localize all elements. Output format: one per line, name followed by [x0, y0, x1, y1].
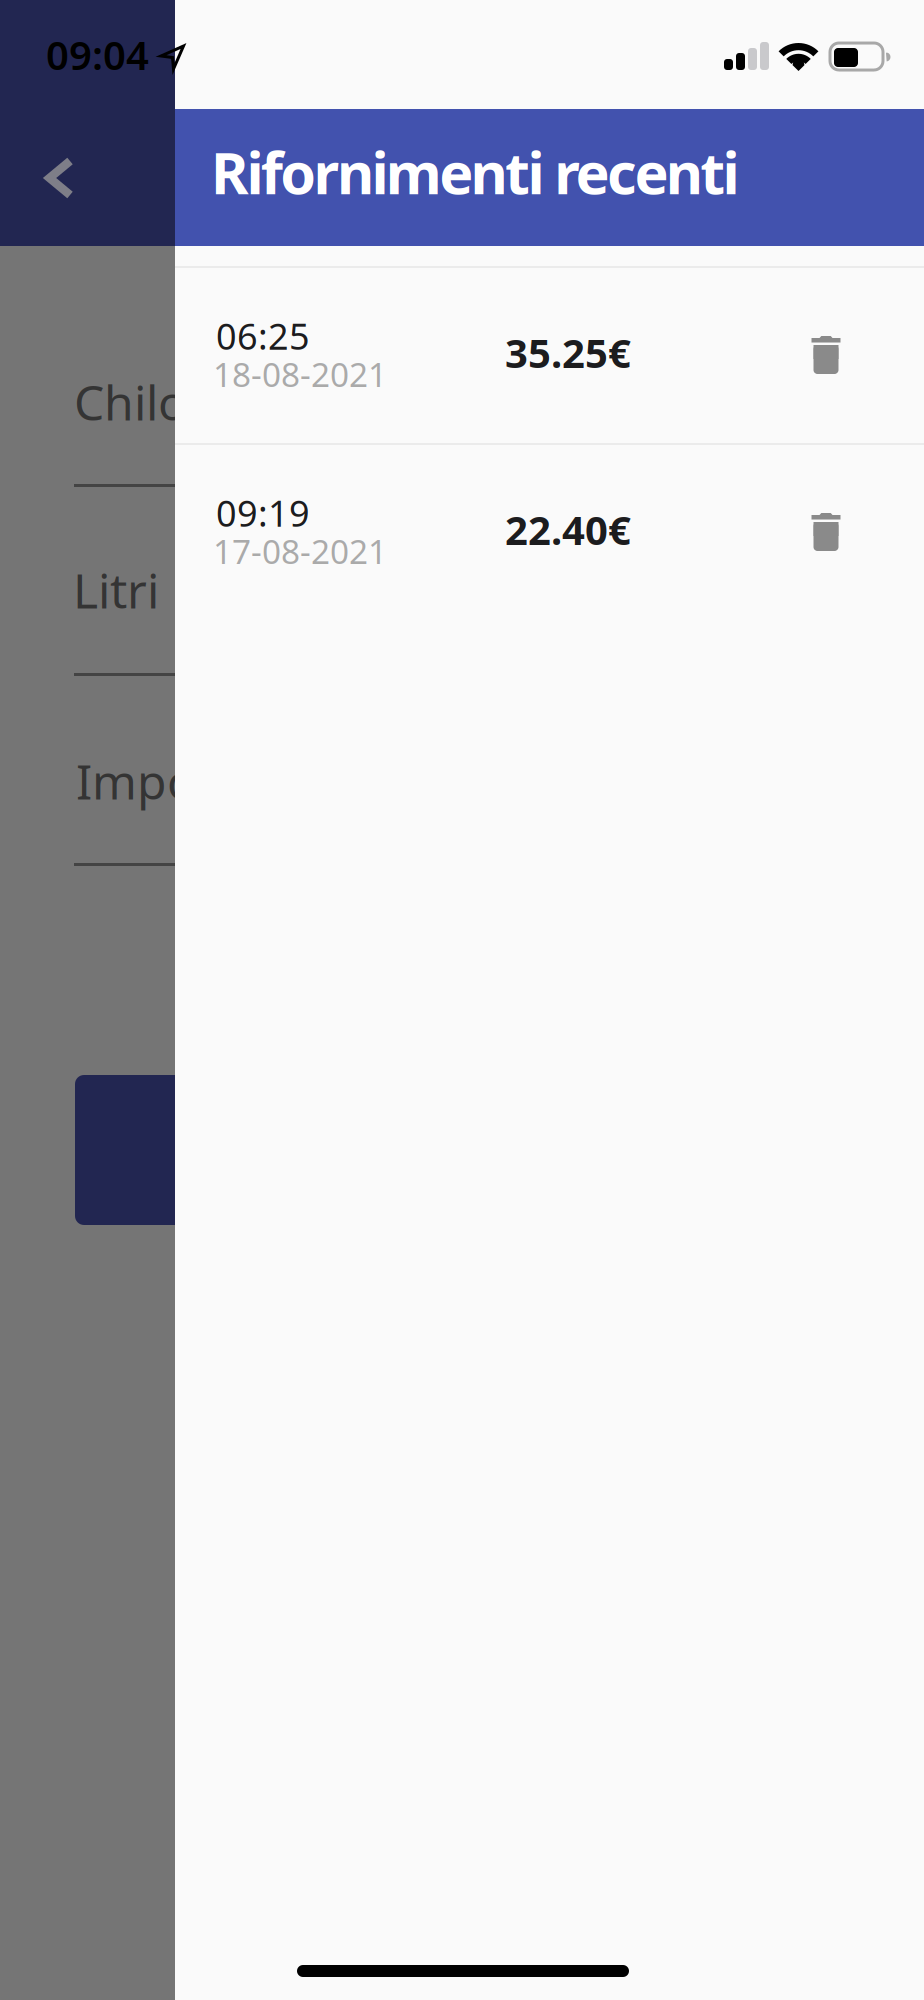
staticText: Importo: [76, 749, 262, 813]
button[interactable]: Elimina rifornimento: [778, 307, 874, 403]
staticText: 17-08-2021: [213, 529, 387, 573]
button[interactable]: 06:25: [175, 268, 924, 443]
staticText: 22.40€: [505, 503, 631, 556]
staticText: 09:19: [216, 489, 310, 537]
staticText: 35.25€: [505, 326, 631, 379]
staticText: Rifornimenti recenti: [211, 134, 740, 210]
staticText: 09:04: [46, 28, 149, 81]
button[interactable]: Elimina rifornimento: [778, 484, 874, 580]
button[interactable]: Indietro: [32, 148, 92, 210]
staticText: 18-08-2021: [213, 352, 387, 396]
button[interactable]: 09:19: [175, 445, 924, 620]
staticText: 06:25: [216, 312, 310, 360]
staticText: Litri: [73, 558, 159, 622]
staticText: Chilometri: [74, 370, 308, 434]
